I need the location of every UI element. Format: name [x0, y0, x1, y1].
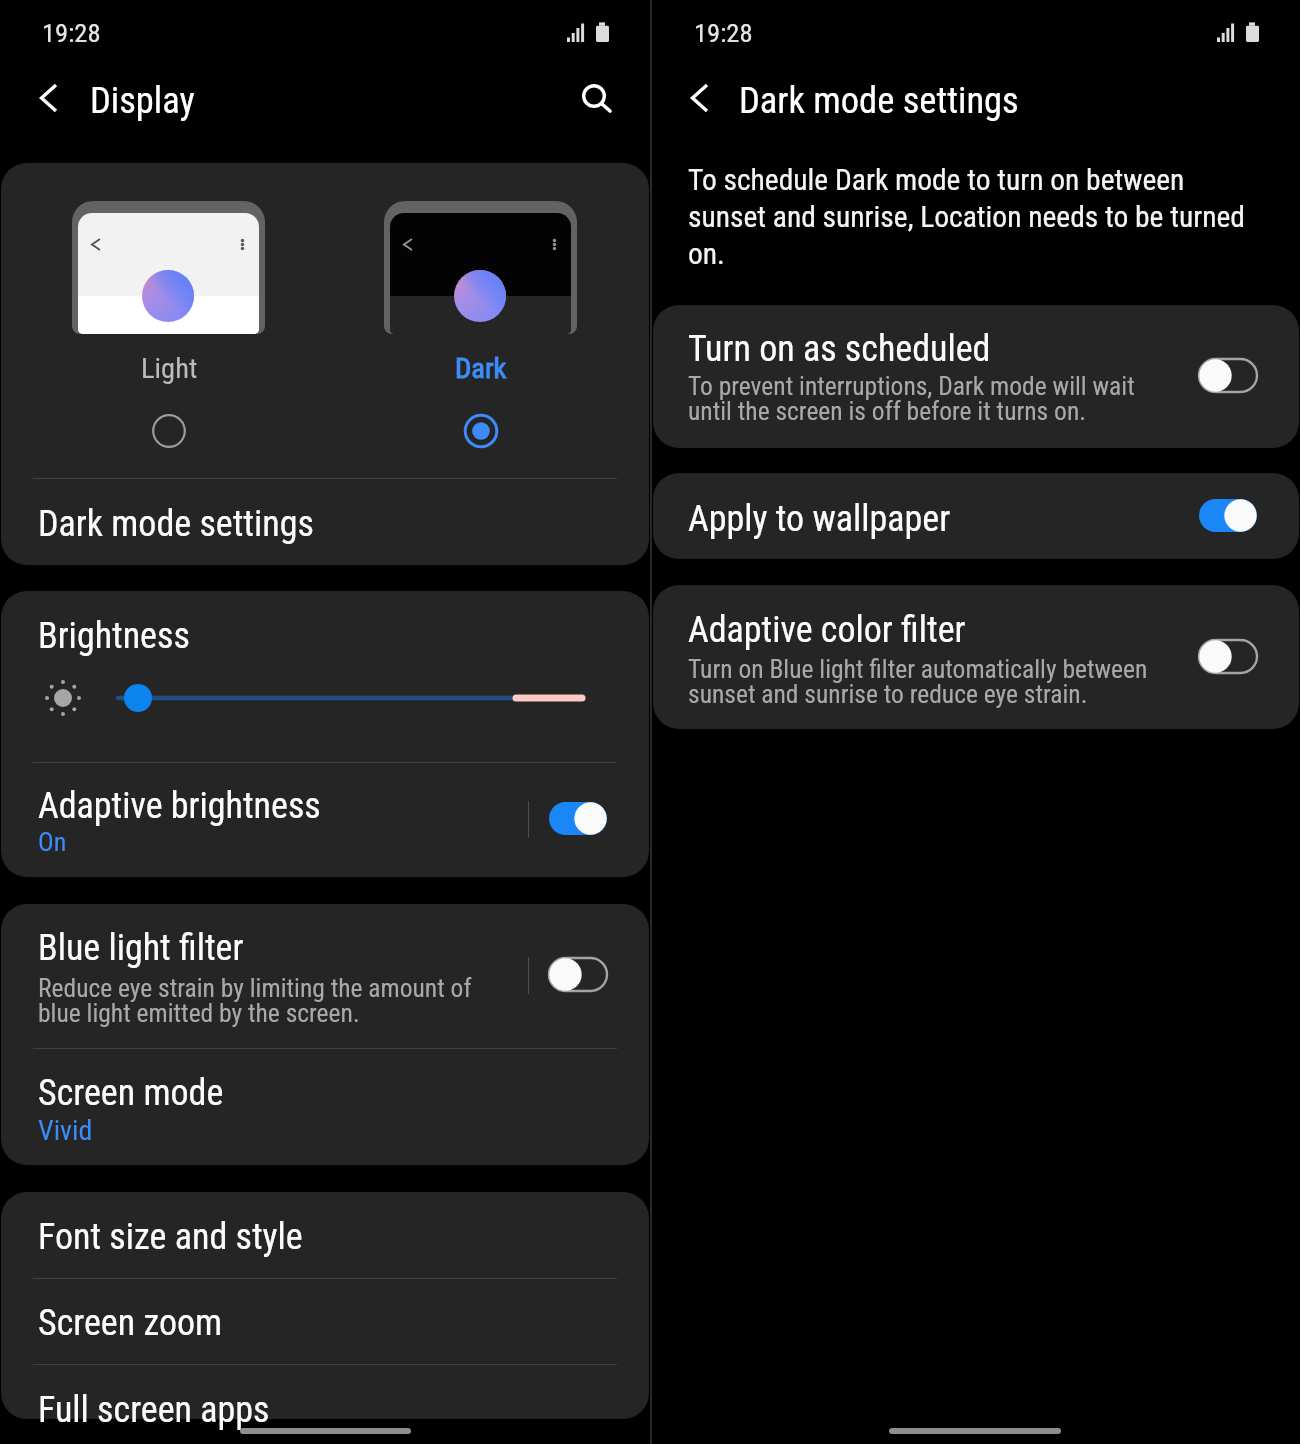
button[interactable]: Adaptive brightness [543, 794, 613, 843]
staticText: Turn on Blue light filter automatically … [688, 654, 1148, 709]
button[interactable]: Dark theme [455, 405, 507, 457]
button[interactable]: Screen mode [1, 1049, 649, 1165]
button[interactable]: Screen zoom [1, 1279, 649, 1364]
button[interactable]: Search [570, 71, 624, 125]
staticText: Apply to wallpaper [688, 498, 951, 540]
staticText: Dark mode settings [739, 79, 1019, 122]
button[interactable]: Apply to wallpaper [653, 473, 1299, 559]
staticText: Adaptive brightness [38, 785, 321, 827]
button[interactable]: Adaptive color filter [653, 585, 1299, 729]
button[interactable]: Navigate up [672, 71, 726, 125]
staticText: Vivid [38, 1114, 93, 1147]
staticText: Light [141, 352, 198, 385]
button[interactable]: Adaptive brightness [1, 763, 649, 877]
button[interactable]: Blue light filter [543, 950, 613, 999]
staticText: 19:28 [42, 17, 101, 48]
button[interactable]: Font size and style [1, 1192, 649, 1278]
button[interactable]: Light theme [143, 405, 195, 457]
staticText: Dark [455, 352, 507, 385]
button[interactable]: Dark mode settings [1, 479, 649, 565]
staticText: 19:28 [694, 17, 753, 48]
staticText: Dark mode settings [38, 503, 314, 545]
staticText: Display [90, 79, 195, 122]
staticText: Turn on as scheduled [688, 328, 991, 370]
button[interactable]: Apply to wallpaper [1193, 491, 1263, 540]
button[interactable]: Turn on as scheduled [1193, 351, 1263, 400]
staticText: Screen zoom [38, 1302, 223, 1344]
staticText: Font size and style [38, 1216, 303, 1258]
staticText: On [38, 827, 67, 857]
staticText: Brightness [38, 615, 190, 657]
button[interactable]: Turn on as scheduled [653, 305, 1299, 448]
staticText: Full screen apps [38, 1389, 270, 1431]
button[interactable]: Full screen apps [1, 1365, 649, 1419]
button[interactable]: Navigate up [21, 71, 75, 125]
staticText: To schedule Dark mode to turn on between… [688, 163, 1258, 271]
button[interactable]: Blue light filter [1, 904, 649, 1048]
staticText: To prevent interruptions, Dark mode will… [688, 371, 1135, 426]
staticText: Blue light filter [38, 927, 244, 969]
staticText: Adaptive color filter [688, 609, 966, 651]
staticText: Screen mode [38, 1072, 224, 1114]
staticText: Reduce eye strain by limiting the amount… [38, 973, 472, 1028]
button[interactable]: Adaptive color filter [1193, 632, 1263, 681]
